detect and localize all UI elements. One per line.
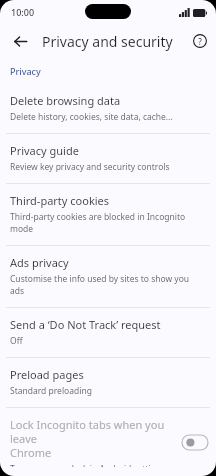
button[interactable]: Delete browsing data — [0, 84, 216, 133]
staticText: Third-party cookies — [10, 193, 110, 208]
staticText: Third-party cookies are blocked in Incog… — [10, 211, 204, 235]
staticText: Send a ‘Do Not Track’ request — [10, 317, 161, 332]
staticText: Review key privacy and security controls — [10, 161, 170, 173]
staticText: 10:00 — [11, 6, 35, 18]
staticText: Off — [10, 335, 23, 347]
other: Lock Incognito tabs toggle — [182, 435, 208, 450]
button[interactable]: Privacy guide — [0, 134, 216, 183]
staticText: ? — [198, 36, 202, 47]
button[interactable]: Lock Incognito tabs when you leave Chrom… — [0, 408, 216, 476]
staticText: Standard preloading — [10, 385, 92, 397]
staticText: Privacy and security — [42, 32, 187, 51]
staticText: Turn on screen lock in Android settings — [10, 463, 166, 467]
staticText: Lock Incognito tabs when you leave Chrom… — [10, 417, 176, 460]
button[interactable]: Ads privacy — [0, 246, 216, 307]
staticText: Preload pages — [10, 367, 84, 382]
button[interactable]: Send a ‘Do Not Track’ request — [0, 308, 216, 357]
staticText: Privacy guide — [10, 143, 79, 158]
staticText: Delete browsing data — [10, 93, 121, 108]
staticText: Delete history, cookies, site data, cach… — [10, 111, 173, 123]
button[interactable]: Help — [187, 28, 213, 54]
staticText: Ads privacy — [10, 255, 69, 270]
staticText: Customise the info used by sites to show… — [10, 273, 204, 297]
staticText: Privacy — [10, 65, 41, 77]
button[interactable]: Preload pages — [0, 358, 216, 407]
button[interactable]: Back — [6, 27, 34, 55]
button[interactable]: Third-party cookies — [0, 184, 216, 245]
